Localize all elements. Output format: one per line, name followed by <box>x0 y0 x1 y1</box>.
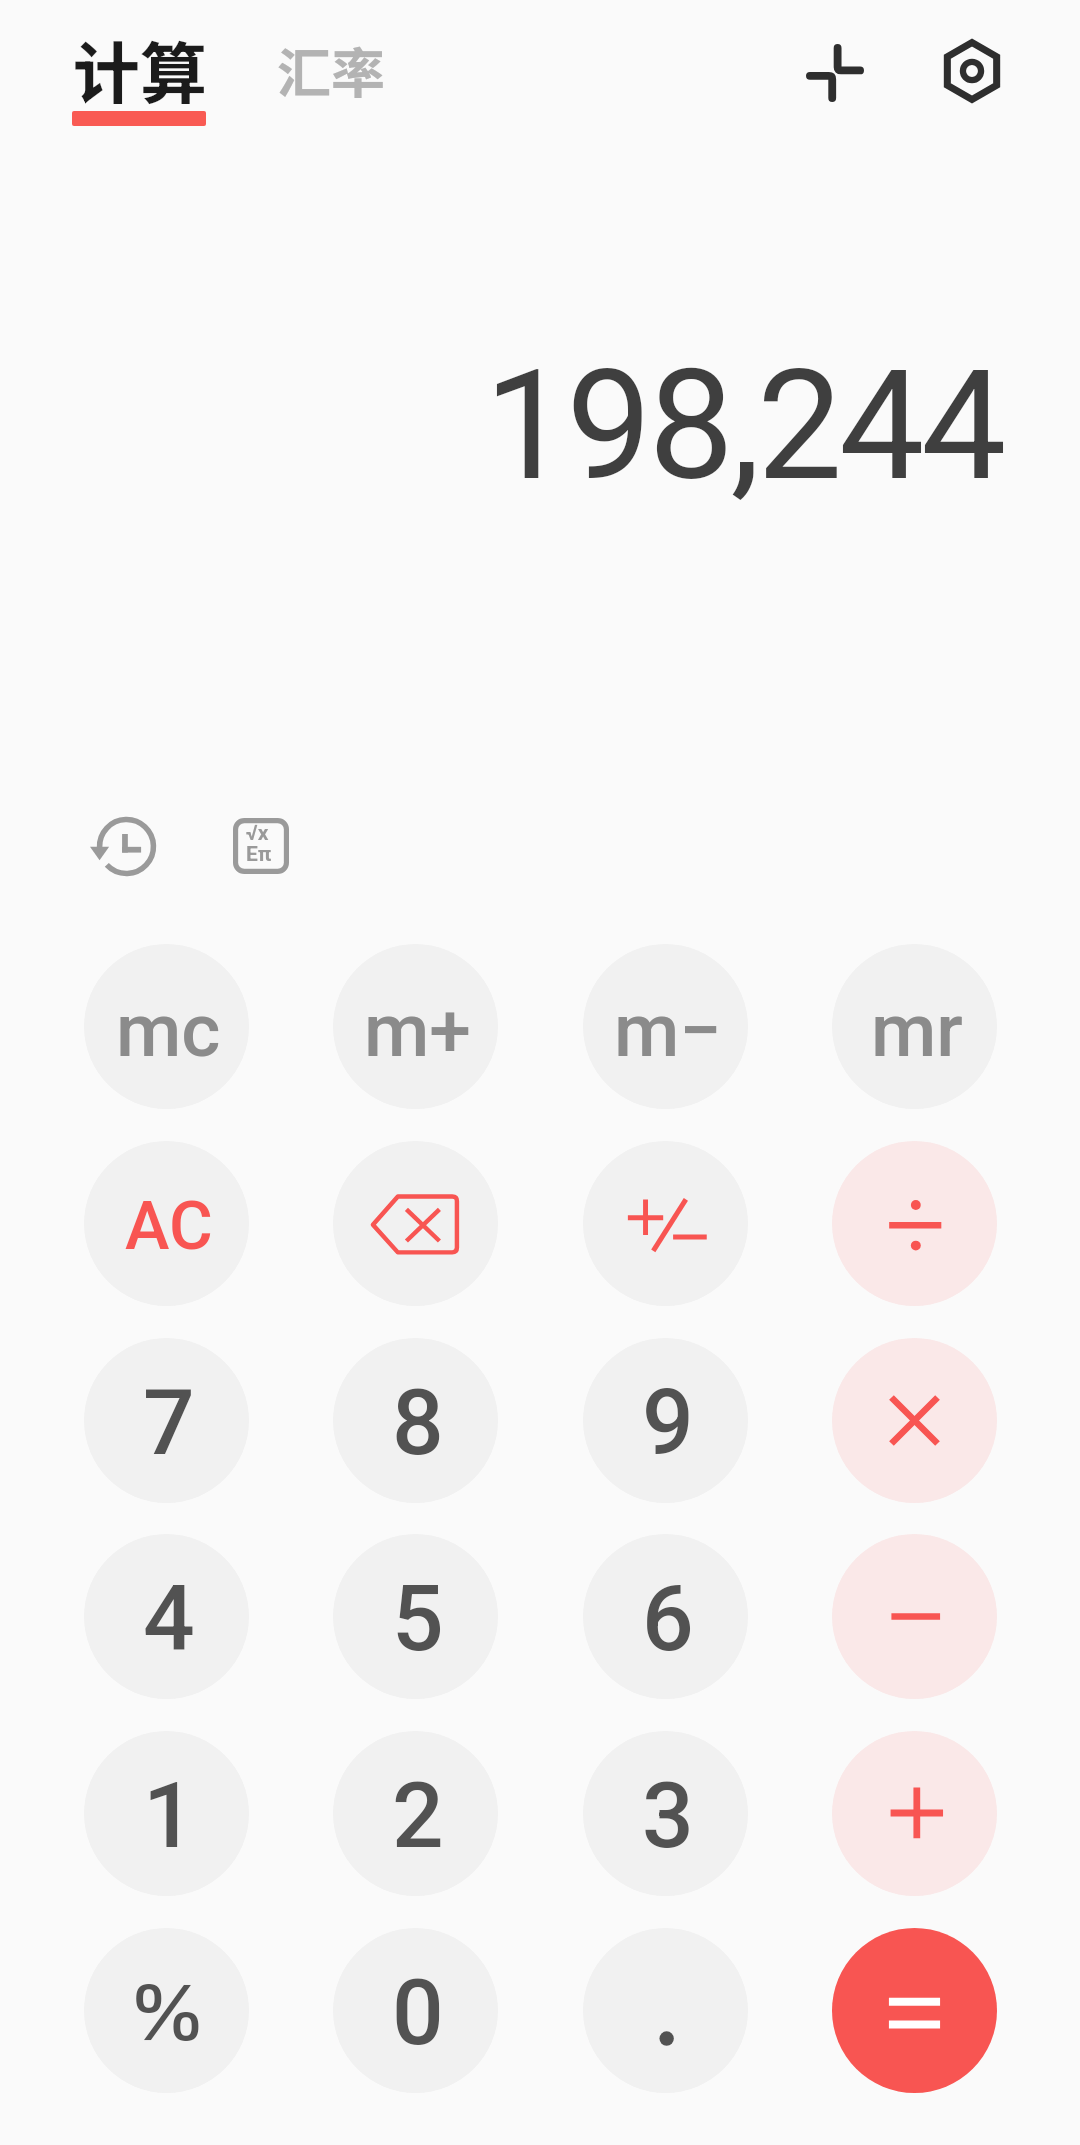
button[interactable]: History <box>81 801 171 891</box>
staticText: AC <box>125 1187 213 1266</box>
staticText: 1 <box>143 1763 195 1870</box>
button[interactable]: Delete <box>333 1141 498 1306</box>
button[interactable]: Divide <box>832 1141 997 1306</box>
staticText: mc <box>116 986 221 1074</box>
button[interactable]: Multiply <box>832 1338 997 1503</box>
staticText: 0 <box>392 1960 444 2067</box>
staticText: 2 <box>392 1763 444 1870</box>
button[interactable]: AC <box>84 1141 249 1306</box>
staticText: Eπ <box>246 842 272 867</box>
staticText: 5 <box>392 1566 444 1673</box>
staticText: 计算 <box>73 20 207 117</box>
staticText: 198,244 <box>0 337 1003 515</box>
button[interactable]: Unit converter <box>790 28 880 118</box>
staticText: 6 <box>642 1566 694 1673</box>
button[interactable]: 计算 <box>60 14 194 111</box>
button[interactable]: 4 <box>84 1534 249 1699</box>
staticText: 4 <box>143 1566 195 1673</box>
staticText: m+ <box>364 986 471 1074</box>
staticText: 3 <box>642 1763 694 1870</box>
button[interactable]: Settings <box>927 26 1017 116</box>
button[interactable]: % <box>84 1928 249 2093</box>
button[interactable]: Decimal point <box>583 1928 748 2093</box>
button[interactable]: 5 <box>333 1534 498 1699</box>
staticText: 9 <box>642 1370 694 1477</box>
button[interactable]: 8 <box>333 1338 498 1503</box>
button[interactable]: 7 <box>84 1338 249 1503</box>
button[interactable]: 汇率 <box>277 30 385 108</box>
button[interactable]: 3 <box>583 1731 748 1896</box>
staticText: mr <box>871 986 963 1074</box>
button[interactable]: 0 <box>333 1928 498 2093</box>
button[interactable]: Equals <box>832 1928 997 2093</box>
button[interactable]: m− <box>583 944 748 1109</box>
button[interactable]: Scientific calculator <box>216 801 306 891</box>
button[interactable]: 6 <box>583 1534 748 1699</box>
button[interactable]: mc <box>84 944 249 1109</box>
button[interactable]: Add <box>832 1731 997 1896</box>
staticText: 8 <box>392 1370 444 1477</box>
button[interactable]: 2 <box>333 1731 498 1896</box>
button[interactable]: 9 <box>583 1338 748 1503</box>
staticText: % <box>129 1970 206 2057</box>
staticText: 7 <box>143 1370 195 1477</box>
button[interactable]: Toggle sign <box>583 1141 748 1306</box>
button[interactable]: mr <box>832 944 997 1109</box>
button[interactable]: m+ <box>333 944 498 1109</box>
button[interactable]: Subtract <box>832 1534 997 1699</box>
button[interactable]: 1 <box>84 1731 249 1896</box>
staticText: m− <box>614 986 722 1074</box>
staticText: √x <box>246 821 269 846</box>
